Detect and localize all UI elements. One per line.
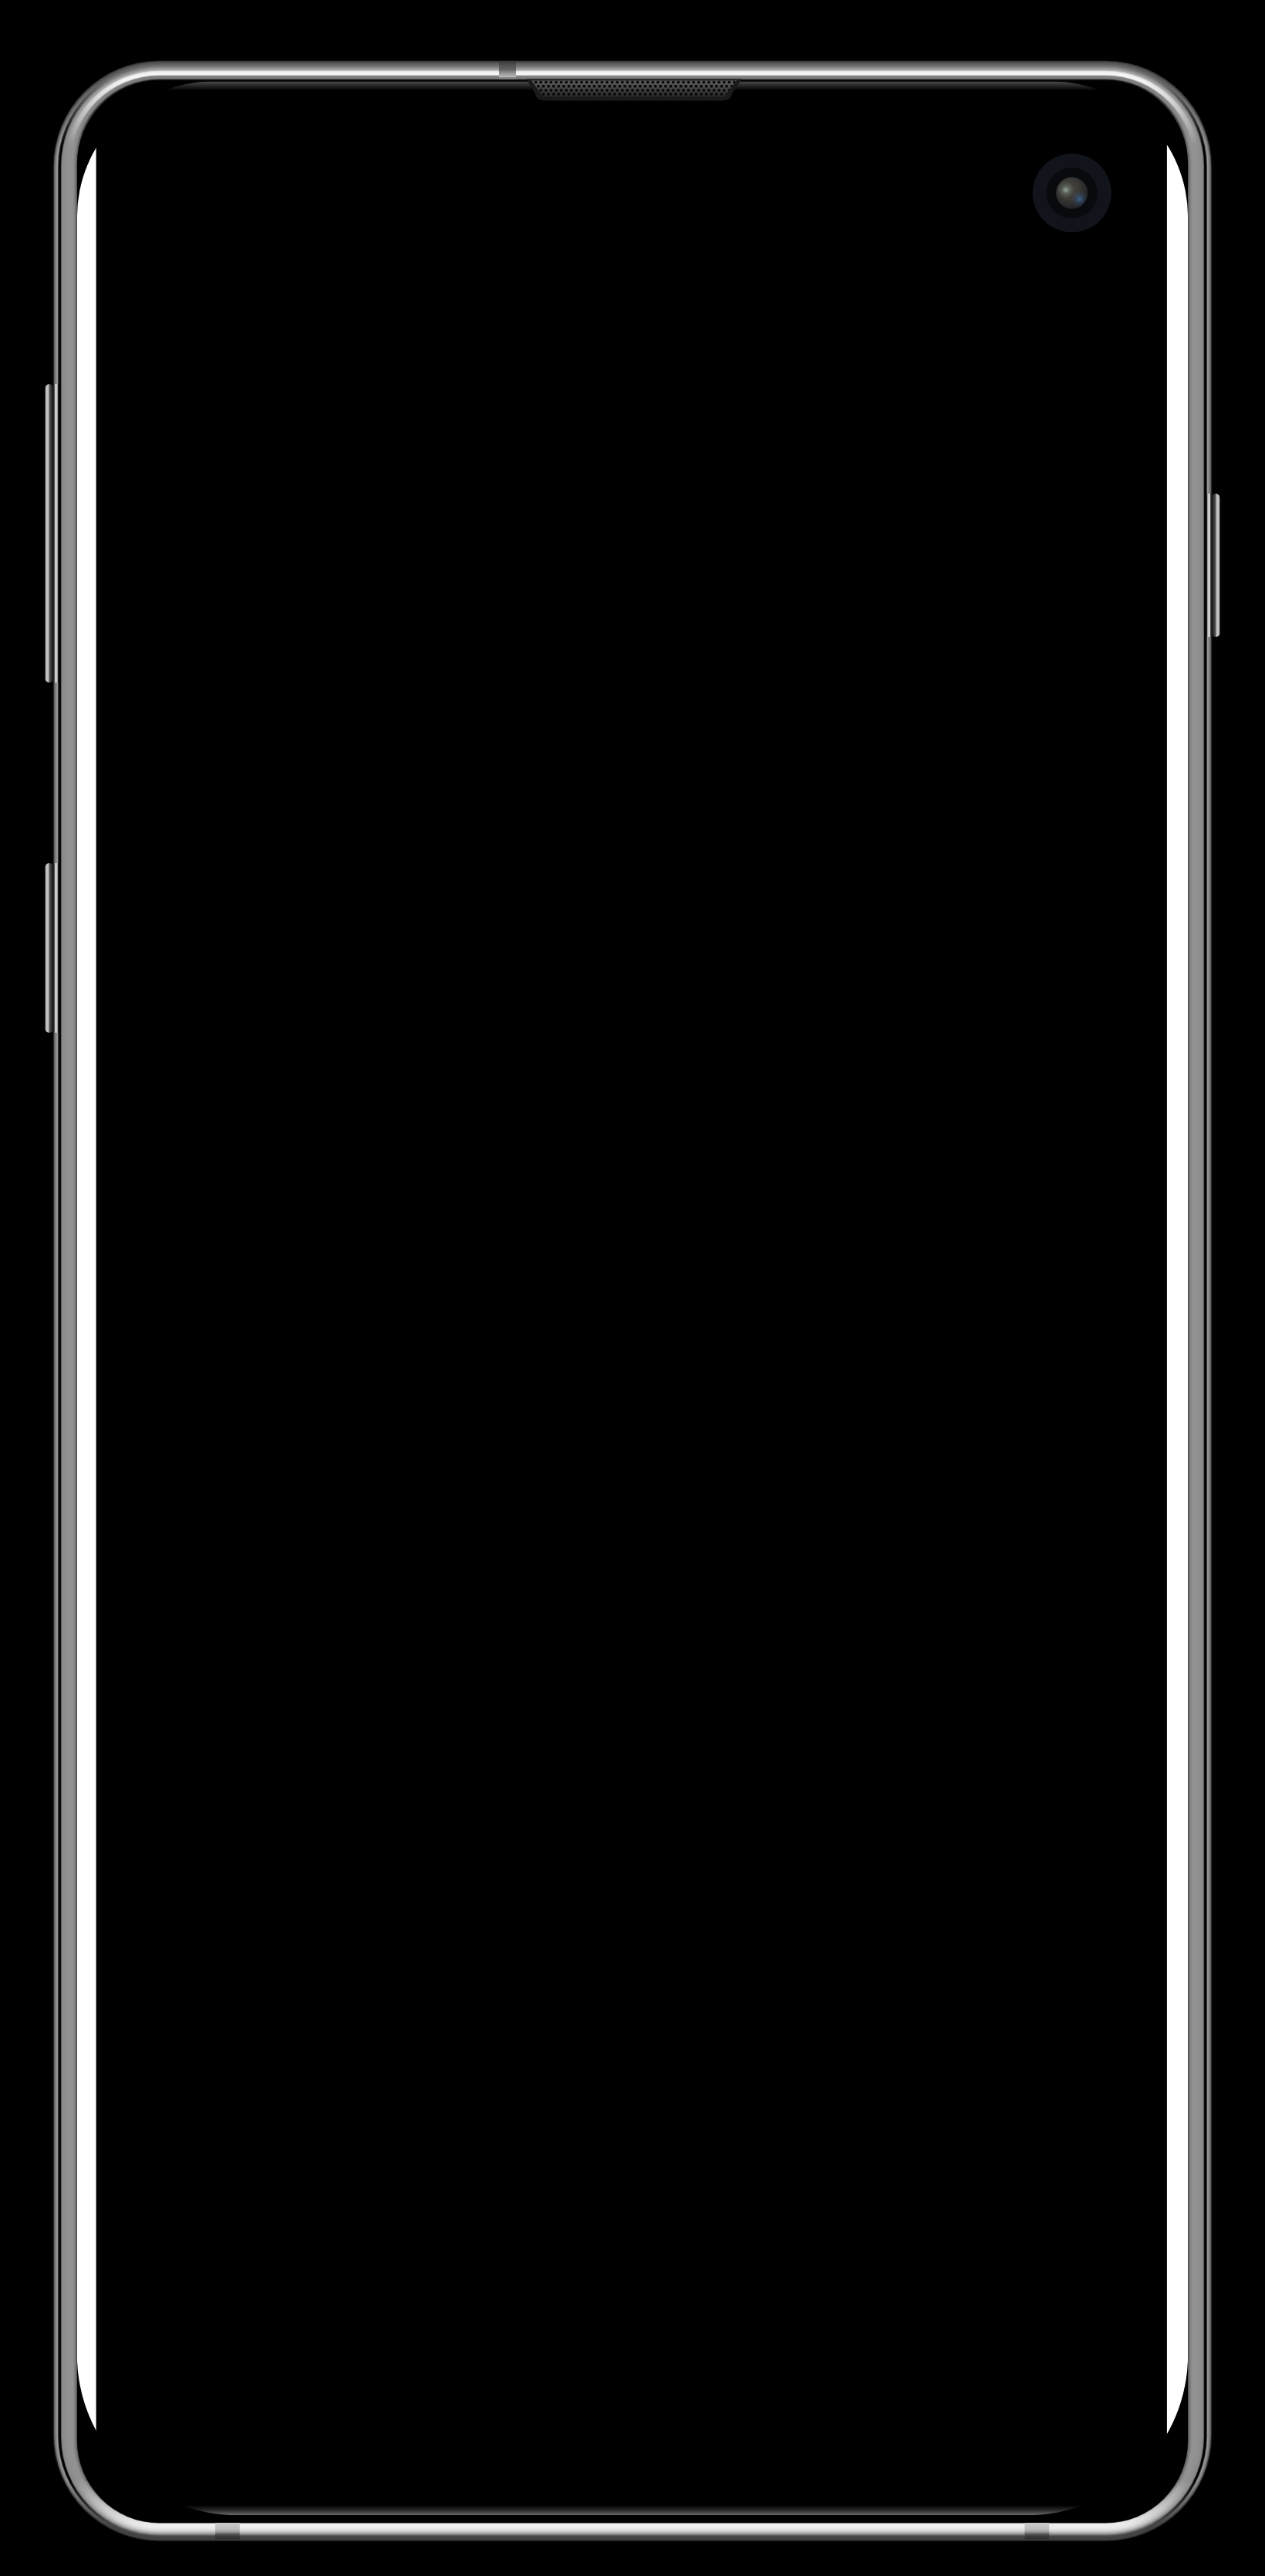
button[interactable]: Bixby [45,863,62,1033]
button[interactable]: Volume [45,384,62,683]
button[interactable]: Power [1203,494,1220,637]
